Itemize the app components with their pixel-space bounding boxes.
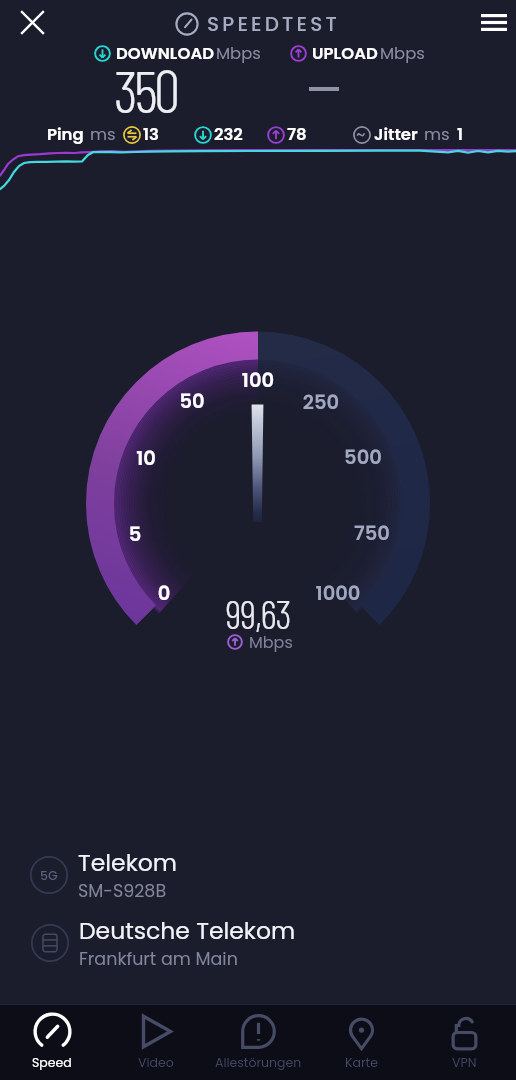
staticText: ms — [90, 123, 116, 146]
staticText: UPLOAD — [312, 42, 378, 65]
staticText: Deutsche Telekom — [79, 914, 296, 947]
staticText: DOWNLOAD — [116, 42, 215, 65]
staticText: 232 — [214, 123, 243, 146]
staticText: 78 — [287, 123, 307, 146]
button[interactable]: Close — [10, 0, 55, 44]
button[interactable]: Deutsche Telekom — [0, 908, 516, 978]
staticText: 1 — [457, 123, 463, 146]
staticText: Karte — [345, 1054, 378, 1071]
staticText: VPN — [452, 1054, 477, 1071]
button[interactable]: Menu — [471, 0, 516, 44]
button[interactable]: Video — [104, 1004, 207, 1080]
staticText: Ping — [47, 123, 84, 146]
staticText: 0 — [124, 580, 204, 607]
staticText: Telekom — [78, 846, 177, 879]
staticText: 99,63 — [0, 589, 516, 637]
staticText: ms — [424, 123, 450, 146]
staticText: Jitter — [374, 123, 418, 146]
staticText: 13 — [143, 123, 159, 146]
button[interactable]: Allestörungen — [207, 1004, 310, 1080]
button[interactable]: Speed — [0, 1004, 104, 1080]
staticText: Video — [138, 1054, 174, 1071]
staticText: 500 — [323, 444, 403, 471]
staticText: 5 — [95, 521, 175, 548]
button[interactable]: 5G — [0, 840, 516, 910]
staticText: 750 — [332, 520, 412, 547]
button[interactable]: VPN — [413, 1004, 516, 1080]
staticText: 350 — [114, 54, 177, 125]
staticText: 250 — [281, 389, 361, 416]
button[interactable]: Karte — [310, 1004, 413, 1080]
staticText: 50 — [152, 388, 232, 415]
staticText: Mbps — [380, 42, 425, 65]
staticText: SPEEDTEST — [207, 10, 341, 38]
staticText: 10 — [106, 445, 186, 472]
staticText: Mbps — [216, 42, 261, 65]
staticText: Speed — [32, 1054, 72, 1071]
staticText: Frankfurt am Main — [79, 947, 238, 972]
staticText: Allestörungen — [215, 1054, 302, 1071]
staticText: 100 — [218, 367, 298, 394]
staticText: 5G — [40, 867, 58, 884]
staticText: 1000 — [298, 580, 378, 607]
staticText: SM-S928B — [78, 879, 167, 904]
staticText: Mbps — [249, 631, 293, 653]
